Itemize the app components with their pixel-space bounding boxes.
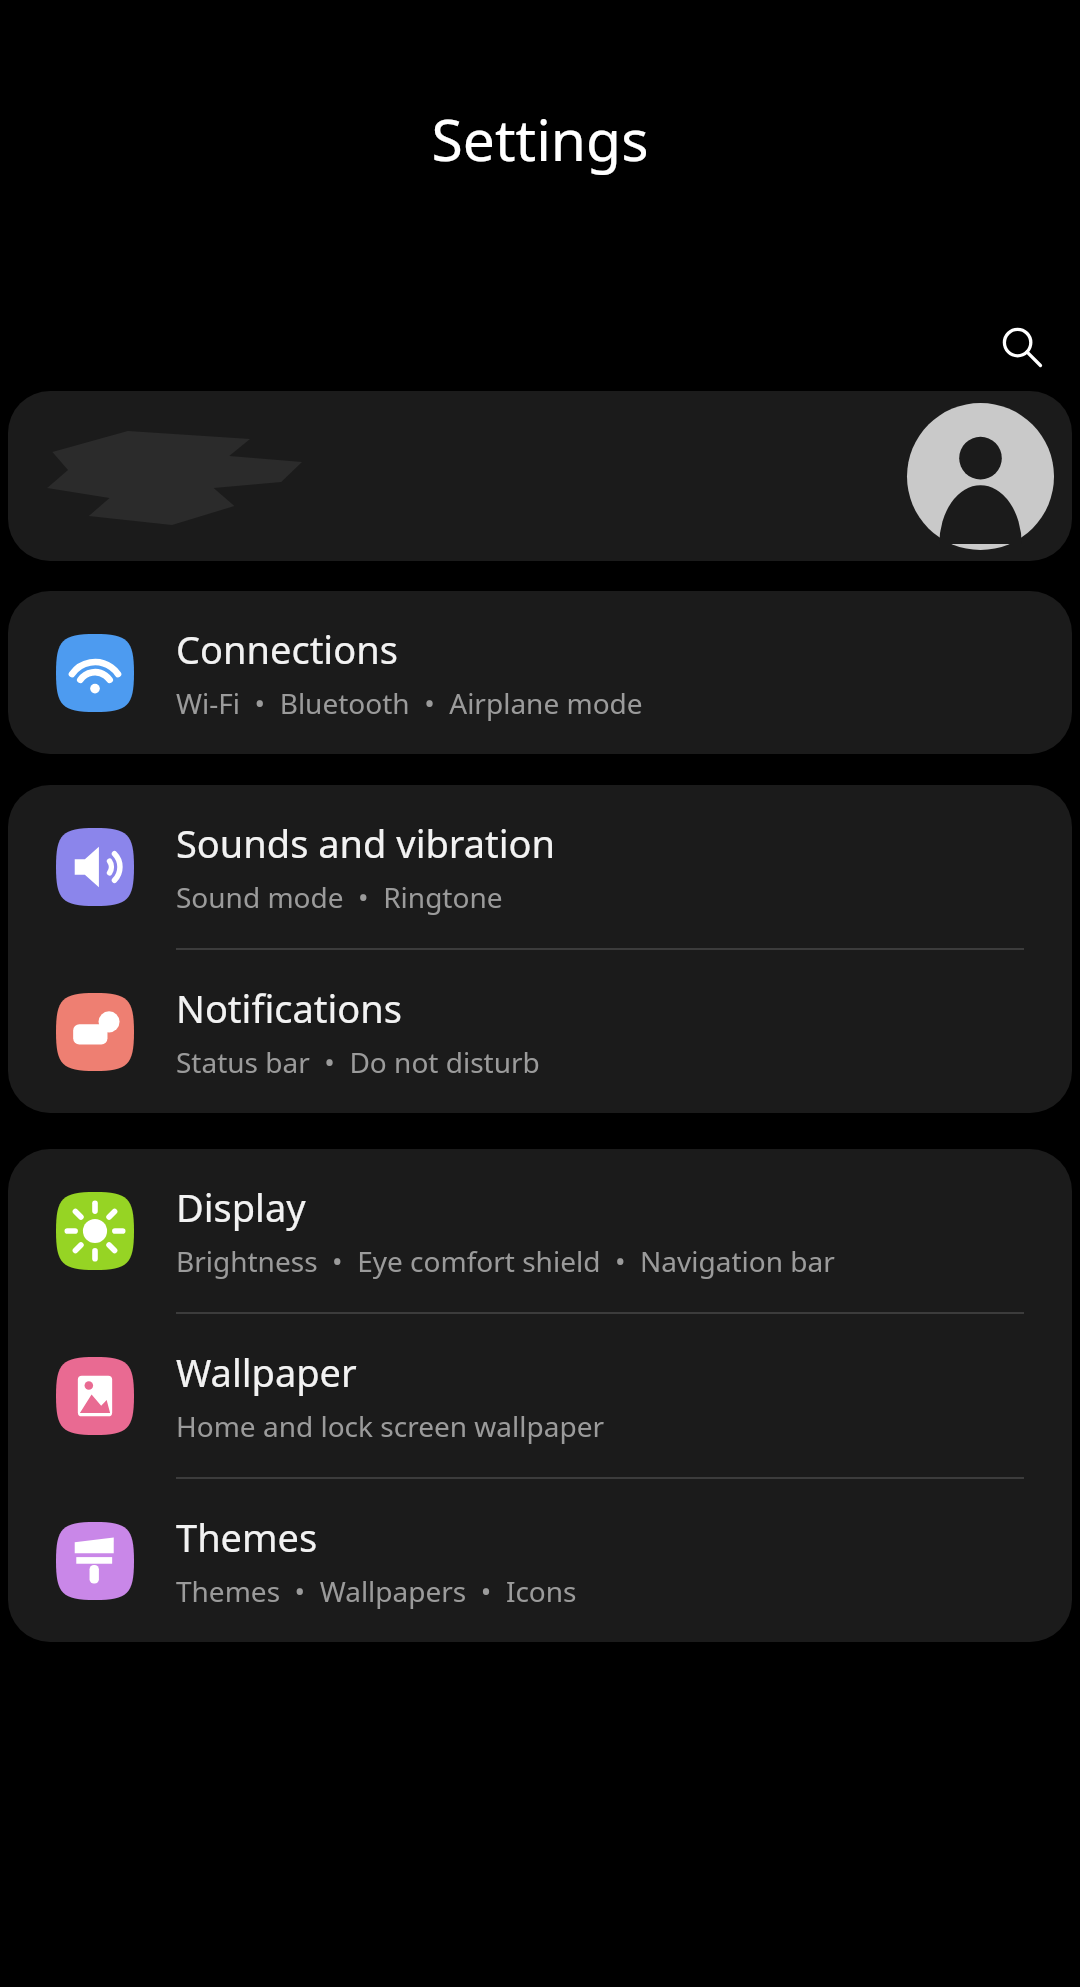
staticText: Themes • Wallpapers • Icons — [176, 1572, 577, 1610]
button[interactable]: Display — [8, 1149, 1072, 1312]
staticText: Display — [176, 1181, 306, 1233]
staticText: Wallpaper — [176, 1346, 357, 1398]
staticText: Themes — [176, 1511, 318, 1563]
button[interactable]: Wallpaper — [8, 1314, 1072, 1477]
staticText: Connections — [176, 623, 398, 675]
button[interactable]: Notifications — [8, 950, 1072, 1113]
staticText: Home and lock screen wallpaper — [176, 1407, 604, 1445]
staticText: Wi-Fi • Bluetooth • Airplane mode — [176, 684, 643, 722]
staticText: Sounds and vibration — [176, 817, 556, 869]
staticText: Brightness • Eye comfort shield • Naviga… — [176, 1242, 835, 1280]
staticText: Settings — [0, 100, 1080, 178]
staticText: Notifications — [176, 982, 403, 1034]
button[interactable]: Connections — [8, 591, 1072, 754]
button[interactable]: Sounds and vibration — [8, 785, 1072, 948]
staticText: Status bar • Do not disturb — [176, 1043, 540, 1081]
button[interactable]: Samsung account — [8, 391, 1072, 561]
button[interactable]: Themes — [8, 1479, 1072, 1642]
button[interactable]: Search — [986, 311, 1058, 383]
staticText: Sound mode • Ringtone — [176, 878, 503, 916]
